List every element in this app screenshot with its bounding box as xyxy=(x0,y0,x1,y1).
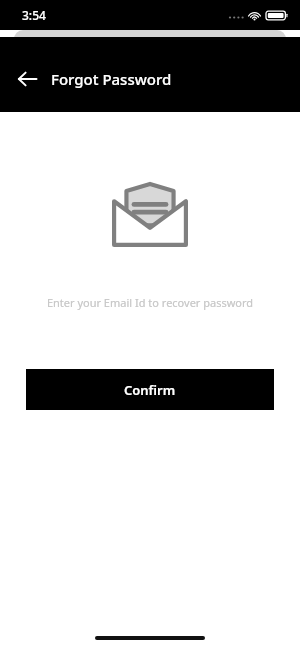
button[interactable]: Confirm xyxy=(26,369,274,410)
staticText: Enter your Email Id to recover password xyxy=(0,295,300,310)
staticText: Forgot Password xyxy=(51,69,172,89)
button[interactable]: Back xyxy=(10,62,44,96)
other: Email xyxy=(112,183,188,247)
staticText: Confirm xyxy=(124,381,176,399)
staticText: 3:54 xyxy=(22,7,46,23)
